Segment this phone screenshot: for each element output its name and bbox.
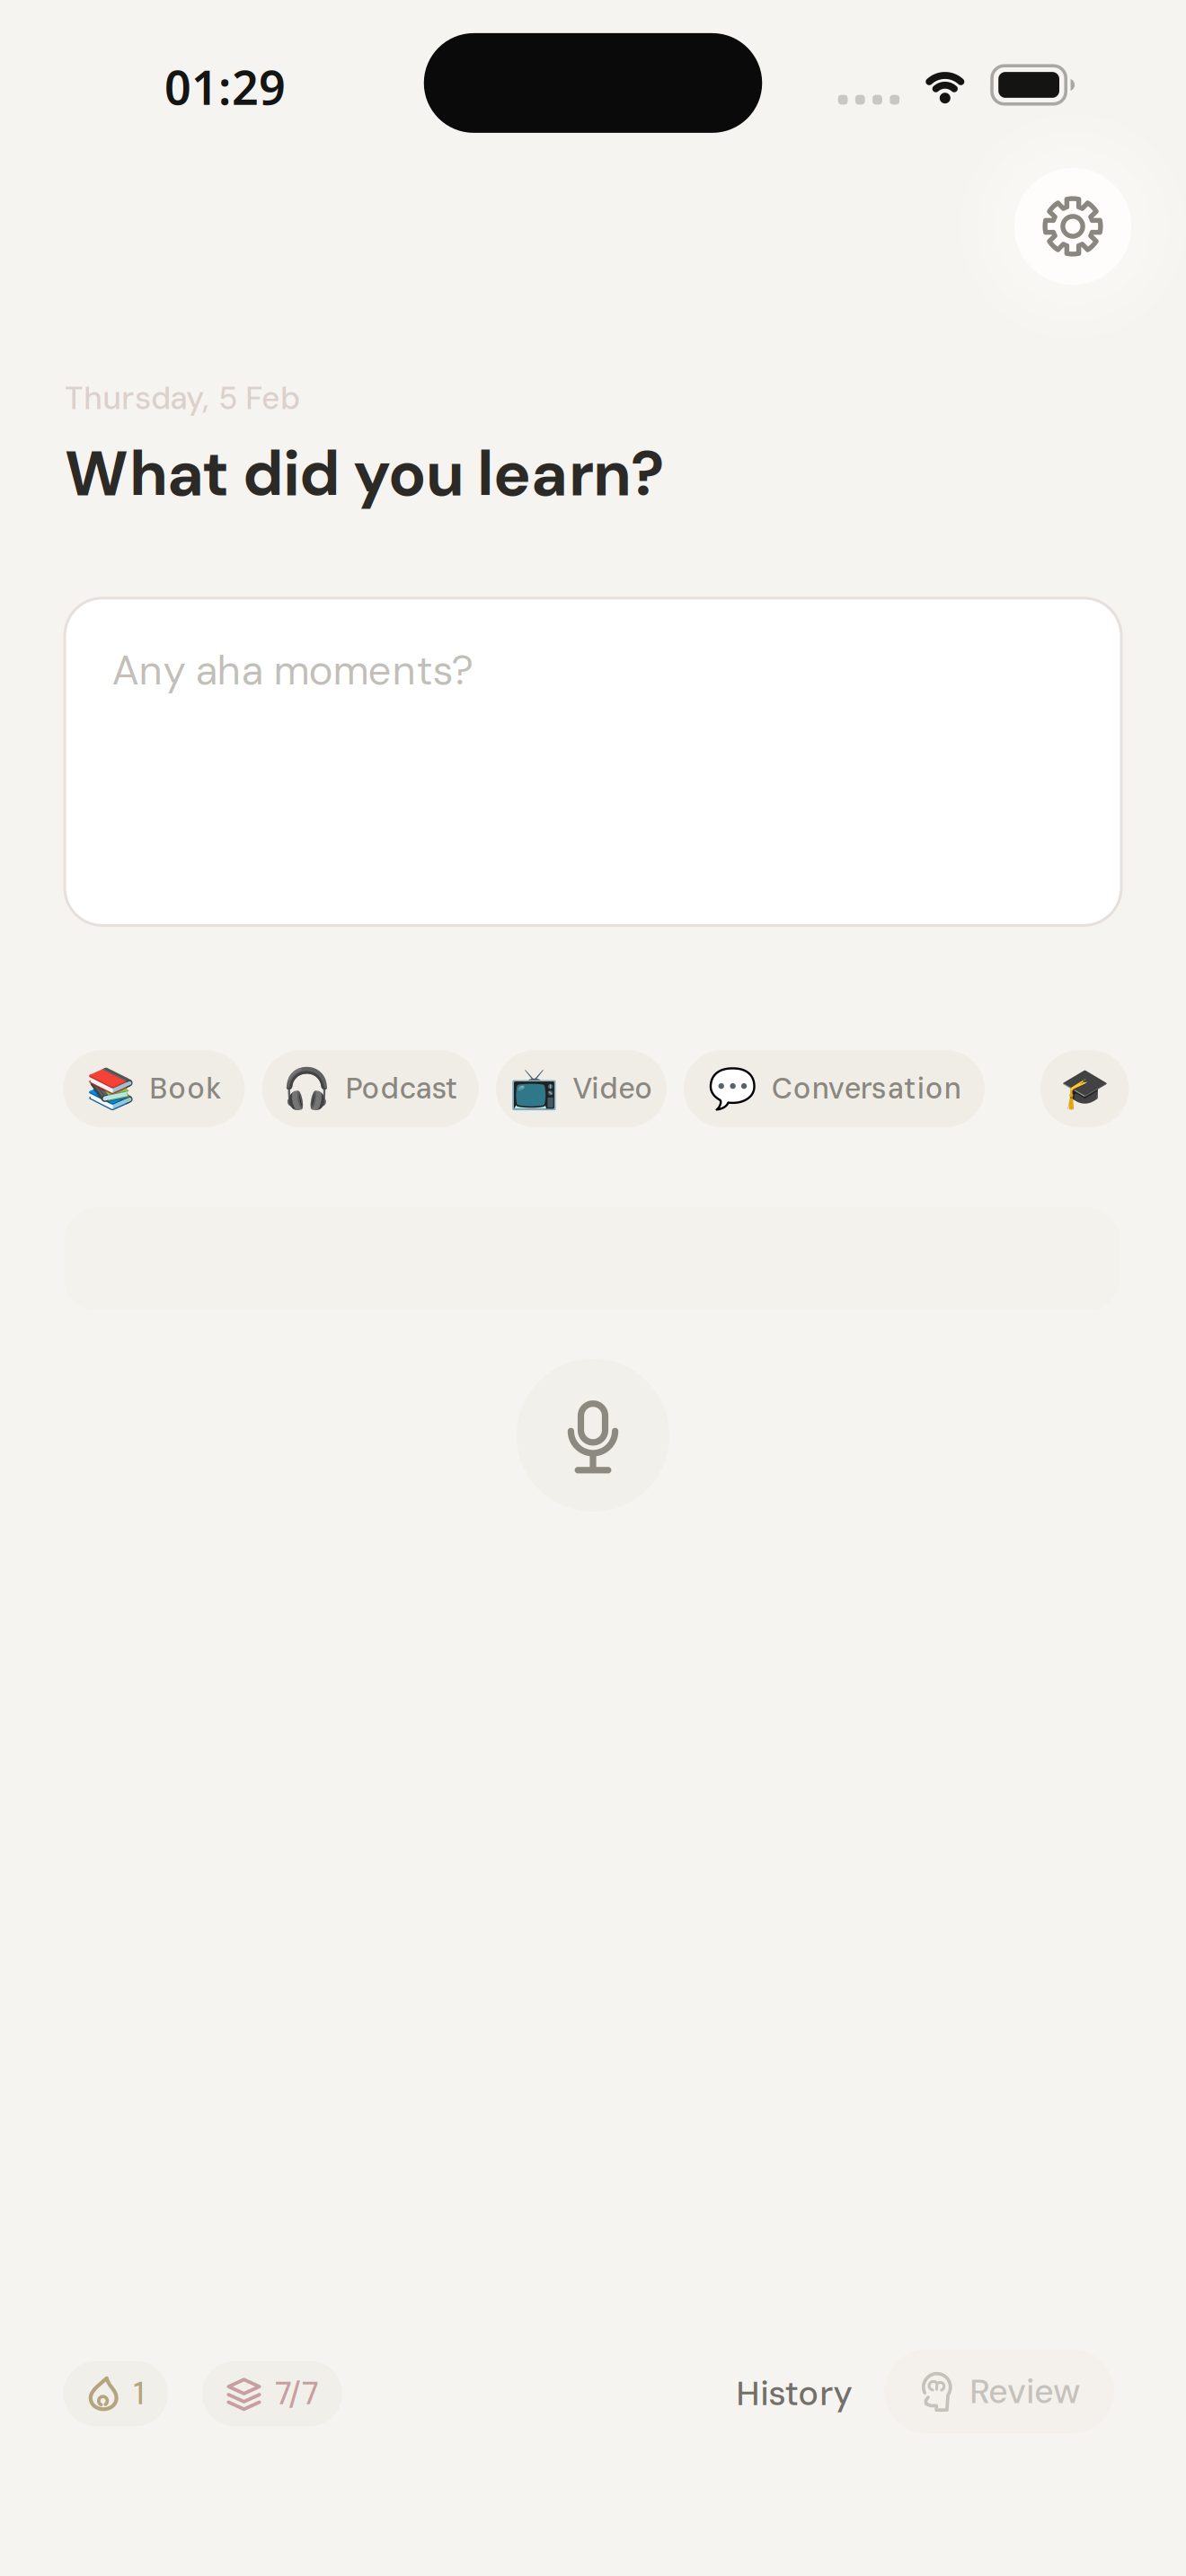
button[interactable]: Record voice note	[172, 453, 223, 504]
